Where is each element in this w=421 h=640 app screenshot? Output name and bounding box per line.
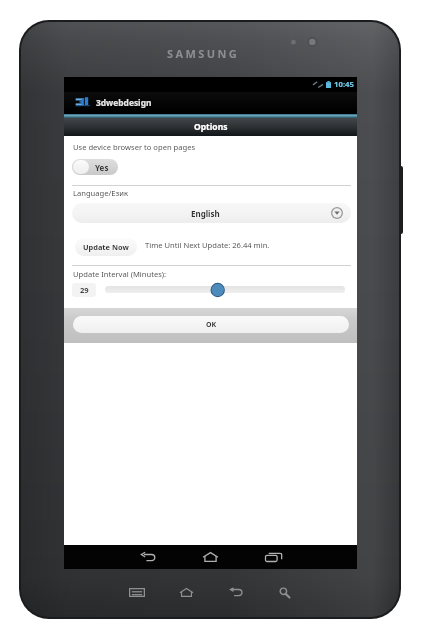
button[interactable]: 29 bbox=[72, 283, 96, 297]
staticText: 10:45 bbox=[334, 79, 355, 90]
button[interactable]: Yes bbox=[72, 159, 118, 175]
button[interactable]: Recent apps bbox=[259, 545, 287, 569]
staticText: SAMSUNG bbox=[167, 46, 240, 61]
button[interactable]: Search bbox=[271, 579, 297, 605]
staticText: OK bbox=[206, 320, 217, 330]
button[interactable]: English bbox=[72, 203, 351, 223]
button[interactable]: Home bbox=[196, 545, 224, 569]
staticText: Update Now bbox=[83, 242, 129, 252]
staticText: Language/Език bbox=[73, 188, 129, 198]
button[interactable]: Back bbox=[135, 545, 163, 569]
staticText: 3dwebdesign bbox=[96, 97, 152, 108]
staticText: 29 bbox=[80, 285, 89, 295]
other: Open language list bbox=[331, 207, 343, 219]
staticText: Update Interval (Minutes): bbox=[73, 269, 167, 279]
button[interactable]: OK bbox=[73, 316, 349, 333]
button[interactable] bbox=[105, 281, 345, 299]
staticText: Time Until Next Update: 26.44 min. bbox=[145, 240, 270, 250]
button[interactable]: Update Now bbox=[75, 238, 137, 256]
staticText: Yes bbox=[95, 162, 109, 173]
button[interactable]: Menu bbox=[124, 579, 150, 605]
button[interactable]: Back bbox=[223, 579, 249, 605]
staticText: Use device browser to open pages bbox=[73, 142, 196, 152]
button[interactable]: Home bbox=[173, 579, 199, 605]
staticText: English bbox=[191, 208, 220, 219]
staticText: Options bbox=[194, 121, 228, 133]
